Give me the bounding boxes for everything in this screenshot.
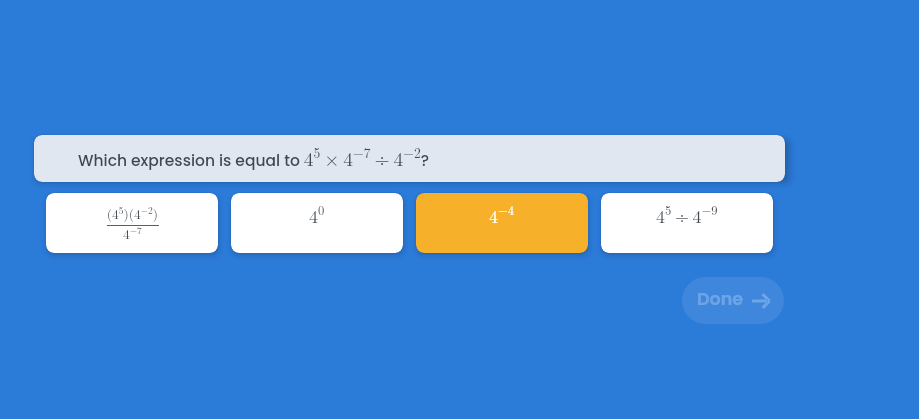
staticText: 45 ÷ 4−9 — [656, 201, 718, 228]
staticText: Done — [697, 287, 744, 312]
staticText: 4−7 — [123, 223, 142, 243]
button[interactable]: 45 ÷ 4−9 — [601, 193, 773, 253]
button[interactable]: 4−4 — [416, 193, 588, 253]
staticText: (45)(4−2) — [100, 203, 165, 223]
other: Next — [752, 292, 770, 310]
button[interactable]: 40 — [231, 193, 403, 253]
button[interactable]: Which expression is equal to 45 × 4−7 ÷ … — [34, 135, 785, 182]
staticText: Which expression is equal to 45 × 4−7 ÷ … — [78, 143, 430, 172]
staticText: 40 — [309, 201, 325, 228]
button[interactable]: (45)(4−2) — [46, 193, 218, 253]
staticText: 4−4 — [489, 201, 515, 228]
button[interactable]: Done — [682, 277, 784, 324]
